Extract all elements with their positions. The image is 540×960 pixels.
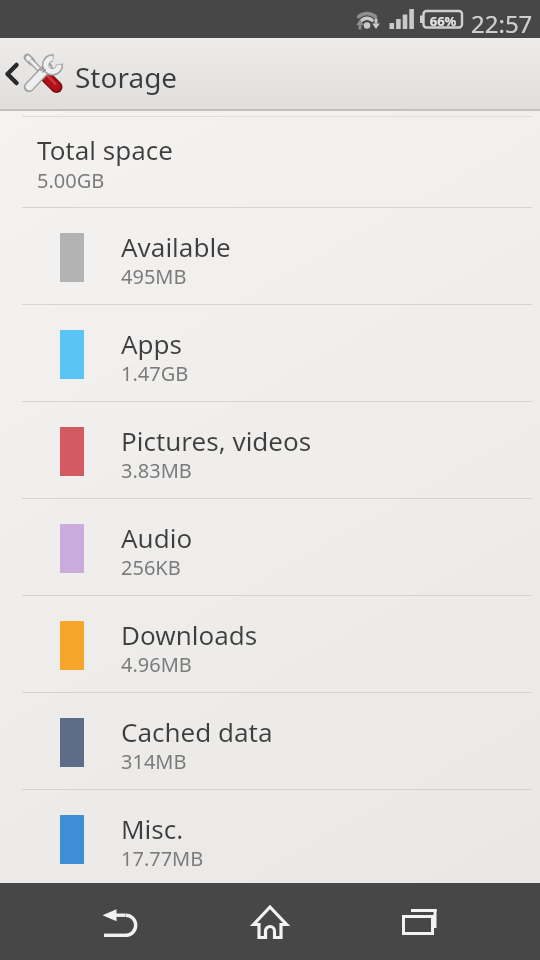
staticText: 66%: [427, 12, 459, 27]
staticText: 4.96MB: [121, 651, 192, 678]
staticText: Apps: [121, 326, 183, 361]
staticText: Misc.: [121, 811, 184, 846]
staticText: 1.47GB: [121, 360, 189, 387]
button[interactable]: [75, 883, 165, 960]
button[interactable]: [225, 883, 315, 960]
button[interactable]: Cached data: [0, 693, 540, 789]
staticText: Available: [121, 229, 231, 264]
button[interactable]: [375, 883, 465, 960]
button[interactable]: Pictures, videos: [0, 402, 540, 498]
button[interactable]: Total space: [0, 120, 540, 207]
staticText: 495MB: [121, 263, 187, 290]
staticText: Storage: [75, 58, 178, 96]
staticText: 256KB: [121, 554, 181, 581]
staticText: Cached data: [121, 714, 273, 749]
button[interactable]: Apps: [0, 305, 540, 401]
button[interactable]: Storage: [0, 38, 540, 111]
staticText: Pictures, videos: [121, 423, 312, 458]
staticText: Downloads: [121, 617, 258, 652]
button[interactable]: Available: [0, 208, 540, 304]
button[interactable]: Audio: [0, 499, 540, 595]
staticText: 3.83MB: [121, 457, 192, 484]
staticText: Total space: [37, 132, 173, 167]
staticText: 22:57: [471, 7, 533, 40]
staticText: 314MB: [121, 748, 187, 775]
button[interactable]: Downloads: [0, 596, 540, 692]
button[interactable]: Misc.: [0, 790, 540, 886]
staticText: 17.77MB: [121, 845, 204, 872]
staticText: 5.00GB: [37, 167, 105, 194]
staticText: Audio: [121, 520, 193, 555]
